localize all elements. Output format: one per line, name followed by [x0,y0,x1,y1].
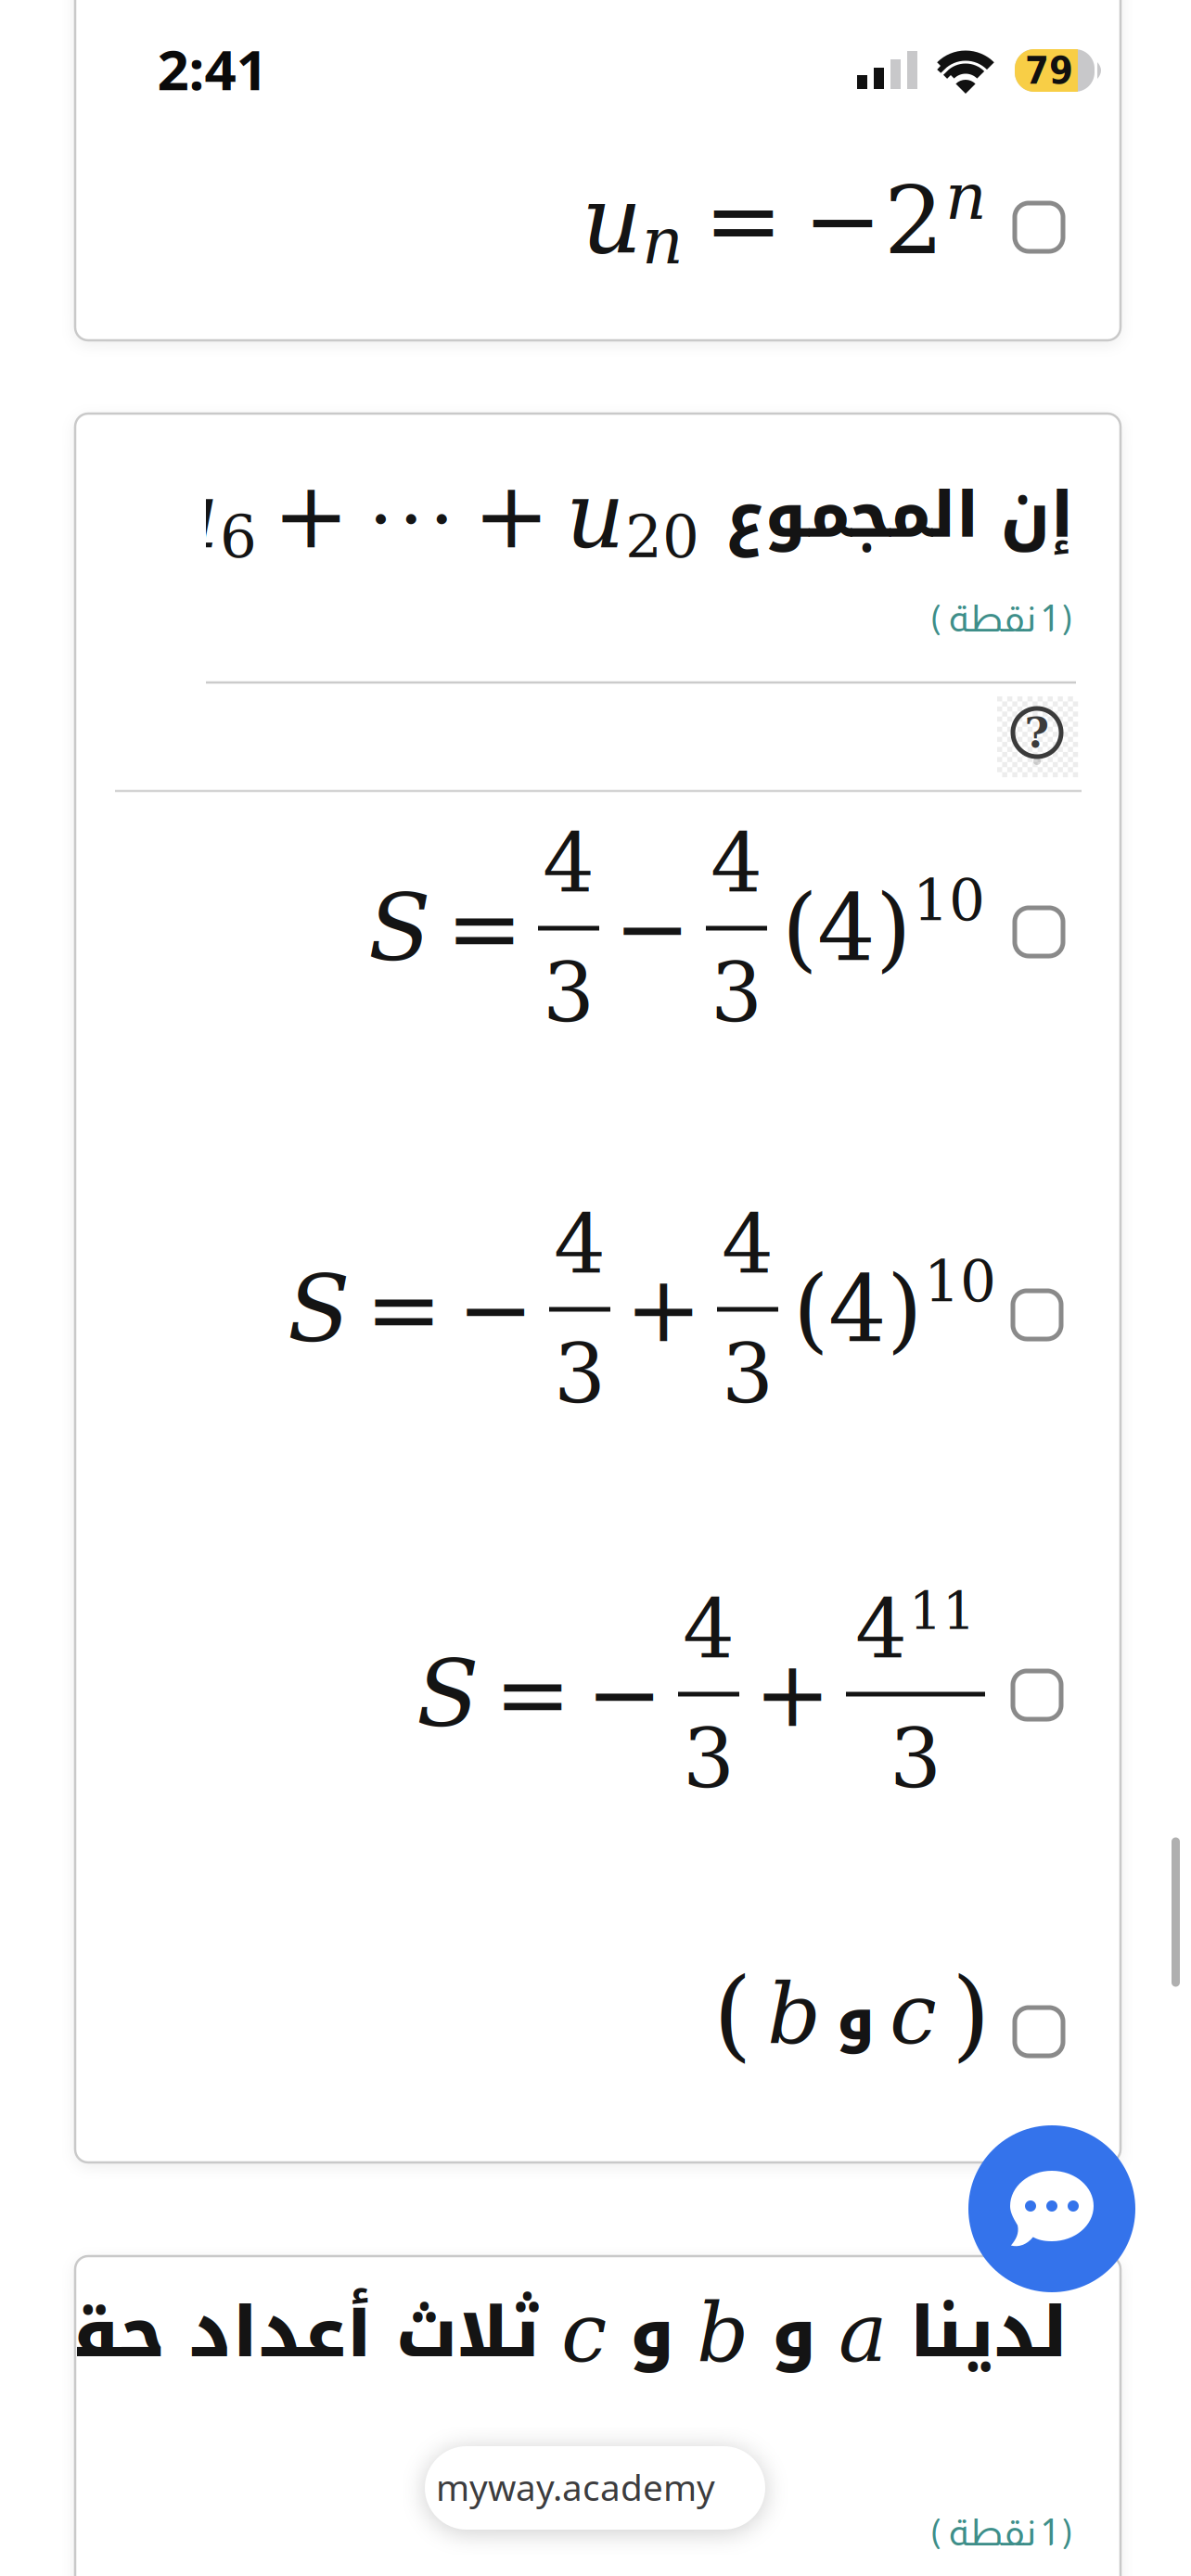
staticText: n [642,204,684,278]
staticText: a [839,2286,887,2381]
staticText: + [754,1641,831,1747]
staticText: = [704,166,783,275]
staticText: و [771,2267,816,2399]
staticText: myway.academy [436,2463,715,2511]
staticText: ثلاث أعداد حقيقية [0,2267,539,2399]
staticText: 10 [913,867,985,933]
staticText: ( 1 نقطة ) [929,598,1073,639]
staticText: u [160,462,220,569]
staticText: (4) [782,875,911,982]
staticText: = [494,1641,571,1747]
staticText: إن المجموع [725,456,1073,575]
button[interactable]: Chat support [968,2125,1135,2292]
staticText: 3 [711,945,762,1040]
button[interactable]: Select answer [1013,1671,1061,1719]
staticText: 4 [554,1197,606,1292]
staticText: 11 [909,1581,976,1641]
button[interactable]: Select answer [1015,203,1063,251]
staticText: ( 1 نقطة ) [929,2512,1073,2553]
staticText: 3 [543,945,595,1040]
staticText: 4 [543,816,595,911]
staticText: = [365,1256,442,1363]
staticText: + [625,1256,702,1363]
staticText: − [457,1256,534,1363]
staticText: ? [1025,708,1050,757]
staticText: ( [713,1956,752,2072]
staticText: u [566,462,625,569]
staticText: c [890,1965,937,2063]
staticText: 4 [711,816,762,911]
staticText: − [614,875,691,982]
staticText: لدينا [909,2267,1068,2399]
staticText: + [473,462,550,569]
staticText: ) [952,1956,991,2072]
button[interactable]: Help [1013,708,1061,757]
staticText: − [803,166,882,275]
staticText: S [368,875,431,982]
staticText: (4) [793,1256,922,1363]
staticText: S [416,1641,480,1747]
staticText: 20 [625,504,699,572]
staticText: 2:41 [157,31,268,106]
staticText: و [836,1963,875,2076]
staticText: b [697,2286,749,2381]
staticText: n [945,159,987,234]
staticText: = [446,875,523,982]
staticText: c [561,2286,607,2381]
staticText: u [582,166,642,275]
staticText: 6 [220,504,257,572]
staticText: − [586,1641,663,1747]
staticText: 3 [683,1711,735,1806]
staticText: b [767,1965,821,2063]
staticText: 4 [722,1197,774,1292]
staticText: + [273,462,350,569]
staticText: 79 [1025,48,1073,93]
staticText: 3 [722,1326,774,1421]
staticText: و [629,2267,674,2399]
staticText: ⋯ [365,470,457,561]
staticText: 3 [554,1326,606,1421]
button[interactable]: Select answer [1013,1291,1061,1339]
staticText: 2 [884,166,943,275]
staticText: 10 [924,1248,996,1315]
button[interactable]: Select answer [1015,908,1063,956]
button[interactable]: Select answer [1015,2008,1063,2056]
staticText: 3 [890,1711,941,1806]
staticText: 4 [855,1582,907,1677]
staticText: S [288,1256,351,1363]
button[interactable]: Address bar: myway.academy [425,2446,765,2530]
staticText: 4 [683,1582,735,1677]
